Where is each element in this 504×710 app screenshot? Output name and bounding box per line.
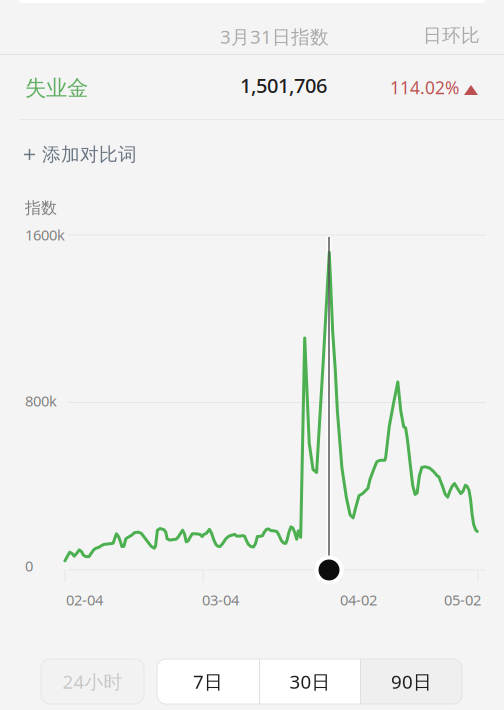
- staticText: 1600k: [25, 225, 65, 244]
- staticText: 添加对比词: [42, 143, 137, 166]
- staticText: 04-02: [340, 590, 377, 609]
- button[interactable]: 24小时: [41, 659, 144, 704]
- staticText: 05-02: [444, 590, 481, 609]
- button[interactable]: 7日: [157, 659, 259, 704]
- button[interactable]: 30日: [260, 659, 360, 704]
- staticText: 114.02%: [390, 76, 459, 99]
- staticText: 03-04: [202, 590, 239, 609]
- staticText: 1,501,706: [240, 72, 327, 99]
- staticText: 90日: [391, 669, 432, 694]
- staticText: 日环比: [423, 24, 480, 47]
- staticText: 3月31日指数: [220, 24, 329, 49]
- staticText: 失业金: [25, 75, 88, 101]
- button[interactable]: 90日: [361, 659, 462, 704]
- staticText: 0: [25, 556, 33, 575]
- staticText: 30日: [289, 669, 330, 694]
- staticText: 800k: [25, 391, 57, 410]
- staticText: 指数: [25, 198, 57, 218]
- staticText: 7日: [193, 669, 223, 694]
- button[interactable]: 添加对比词: [24, 143, 137, 166]
- staticText: 02-04: [66, 590, 103, 609]
- staticText: 24小时: [62, 669, 122, 694]
